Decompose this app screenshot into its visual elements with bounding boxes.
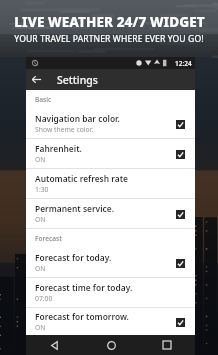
staticText: Automatic refresh rate	[35, 173, 128, 184]
button[interactable]: Recent apps	[139, 335, 195, 355]
staticText: Forecast for tomorrow.	[35, 311, 129, 322]
staticText: Forecast	[35, 234, 62, 243]
staticText: Show theme color.	[35, 125, 94, 134]
staticText: ON	[35, 264, 46, 273]
button[interactable]: Toggle Forecast for today.	[173, 256, 187, 270]
button[interactable]: Toggle Permanent service.	[173, 207, 187, 221]
staticText: ON	[35, 323, 46, 332]
button[interactable]: Fahrenheit.	[26, 139, 195, 168]
staticText: ON	[35, 215, 46, 224]
staticText: Forecast for today.	[35, 252, 112, 263]
staticText: Settings	[57, 73, 98, 87]
button[interactable]: Back	[26, 69, 47, 90]
button[interactable]: Forecast time for today.	[26, 278, 195, 307]
staticText: 12:24	[175, 59, 192, 68]
staticText: YOUR TRAVEL PARTNER WHERE EVER YOU GO!	[14, 33, 204, 45]
staticText: 1:30	[35, 185, 49, 194]
staticText: 07:00	[35, 294, 53, 303]
button[interactable]: Navigation bar color.	[26, 109, 195, 138]
staticText: ON	[35, 155, 46, 164]
staticText: Permanent service.	[35, 203, 114, 214]
staticText: Navigation bar color.	[35, 113, 120, 124]
button[interactable]: Automatic refresh rate	[26, 169, 195, 198]
staticText: Fahrenheit.	[35, 143, 82, 154]
button[interactable]: Forecast for today.	[26, 248, 195, 277]
button[interactable]: Toggle Fahrenheit.	[173, 147, 187, 161]
button[interactable]: Toggle Navigation bar color.	[173, 117, 187, 131]
button[interactable]: Permanent service.	[26, 199, 195, 228]
staticText: LIVE WEATHER 24/7 WIDGET	[14, 13, 205, 31]
staticText: Forecast time for today.	[35, 282, 133, 293]
staticText: Basic	[35, 95, 52, 104]
button[interactable]: Home	[83, 335, 139, 355]
button[interactable]: Back	[26, 335, 83, 355]
button[interactable]: Forecast for tomorrow.	[26, 308, 195, 335]
button[interactable]: Toggle Forecast for tomorrow.	[173, 315, 187, 329]
